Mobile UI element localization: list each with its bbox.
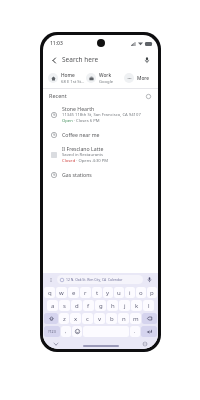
button[interactable]: z xyxy=(59,313,69,324)
button[interactable]: Enter xyxy=(141,326,157,337)
button[interactable]: ?123 xyxy=(44,326,60,337)
button[interactable]: j xyxy=(119,300,130,311)
button[interactable]: c xyxy=(82,313,93,324)
staticText: v xyxy=(98,315,102,323)
button[interactable]: s xyxy=(59,300,70,311)
staticText: , xyxy=(65,328,67,335)
staticText: Saved in Restaurants xyxy=(62,152,104,158)
staticText: l xyxy=(148,302,150,310)
staticText: p xyxy=(150,289,154,297)
button[interactable]: b xyxy=(106,313,117,324)
staticText: Work xyxy=(99,72,112,79)
staticText: o xyxy=(139,289,143,297)
button[interactable]: n xyxy=(118,313,129,324)
button[interactable]: Coffee near me xyxy=(43,127,158,142)
button[interactable]: Back xyxy=(43,51,158,68)
button[interactable]: Work xyxy=(86,68,124,88)
staticText: Google xyxy=(99,79,114,85)
staticText: x xyxy=(74,315,78,323)
button[interactable]: Back xyxy=(49,55,59,65)
button[interactable]: a xyxy=(47,300,58,311)
staticText: f xyxy=(87,302,90,310)
button[interactable]: w xyxy=(56,287,67,298)
button[interactable]: f xyxy=(83,300,94,311)
button[interactable]: e xyxy=(68,287,79,298)
staticText: t xyxy=(96,289,99,297)
staticText: . xyxy=(134,328,136,335)
staticText: q xyxy=(48,289,52,297)
staticText: 11345 118th St, San Francisco, CA 94107 xyxy=(62,112,141,118)
staticText: Home xyxy=(61,72,75,79)
staticText: n xyxy=(122,315,126,323)
button[interactable]: More options xyxy=(47,276,55,284)
button[interactable]: Il Fresclano Latte xyxy=(43,142,158,167)
button[interactable]: u xyxy=(114,287,124,298)
staticText: g xyxy=(99,302,103,310)
staticText: b xyxy=(110,315,114,323)
staticText: r xyxy=(84,289,87,297)
staticText: a xyxy=(51,302,55,310)
button[interactable]: Stone Hearth xyxy=(43,102,158,127)
button[interactable]: r xyxy=(80,287,91,298)
staticText: 68 E 1st St... xyxy=(61,79,85,85)
staticText: z xyxy=(63,315,66,323)
staticText: Coffee near me xyxy=(62,131,100,138)
button[interactable]: Emoji xyxy=(72,326,82,337)
button[interactable]: h xyxy=(107,300,118,311)
staticText: Gas stations xyxy=(62,171,92,178)
button[interactable]: Backspace xyxy=(142,313,157,324)
button[interactable]: Voice input xyxy=(145,275,154,284)
button[interactable]: Gas stations xyxy=(43,167,158,182)
button[interactable]: g xyxy=(95,300,106,311)
staticText: Recent xyxy=(49,92,144,99)
staticText: ?123 xyxy=(48,329,56,334)
button[interactable]: y xyxy=(103,287,113,298)
staticText: d xyxy=(75,302,79,310)
staticText: Closed · Opens 4:30 PM xyxy=(62,158,109,164)
staticText: i xyxy=(129,289,131,297)
button[interactable]: i xyxy=(125,287,135,298)
button[interactable]: , xyxy=(61,326,71,337)
button[interactable]: Info xyxy=(144,92,152,100)
staticText: y xyxy=(106,289,110,297)
button[interactable]: Hide keyboard xyxy=(53,341,59,347)
button[interactable]: More xyxy=(124,68,153,88)
button[interactable]: p xyxy=(147,287,157,298)
button[interactable]: x xyxy=(70,313,81,324)
button[interactable]: 12 N. Oak St. Rim City, CA Calendar xyxy=(57,275,143,284)
staticText: w xyxy=(59,289,64,297)
staticText: c xyxy=(86,315,89,323)
button[interactable]: k xyxy=(131,300,142,311)
staticText: 11:03 xyxy=(50,40,63,47)
button[interactable]: Home xyxy=(48,68,86,88)
button[interactable]: . xyxy=(130,326,140,337)
staticText: u xyxy=(117,289,121,297)
button[interactable]: o xyxy=(136,287,146,298)
staticText: Stone Hearth xyxy=(62,105,95,112)
button[interactable]: q xyxy=(44,287,55,298)
staticText: Search here xyxy=(62,55,141,64)
button[interactable]: l xyxy=(143,300,154,311)
button[interactable]: v xyxy=(94,313,105,324)
staticText: 12 N. Oak St. Rim City, CA Calendar xyxy=(66,277,123,282)
button[interactable]: Shift xyxy=(44,313,58,324)
staticText: j xyxy=(124,302,126,310)
staticText: Il Fresclano Latte xyxy=(62,145,104,152)
button[interactable]: d xyxy=(71,300,82,311)
button[interactable]: m xyxy=(130,313,141,324)
staticText: s xyxy=(63,302,66,310)
staticText: k xyxy=(135,302,139,310)
staticText: Open · Closes 6 PM xyxy=(62,118,100,124)
staticText: m xyxy=(133,315,139,323)
button[interactable]: Keyboard settings xyxy=(142,341,148,347)
button[interactable]: Voice search xyxy=(141,54,152,65)
button[interactable]: t xyxy=(92,287,102,298)
staticText: e xyxy=(72,289,76,297)
staticText: More xyxy=(137,75,150,82)
staticText: h xyxy=(111,302,115,310)
